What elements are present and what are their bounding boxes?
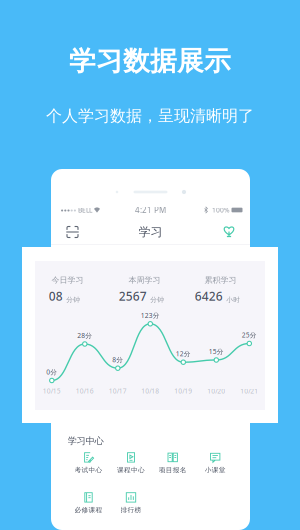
staticText: 2567	[119, 288, 147, 304]
staticText: BELL	[78, 206, 92, 214]
staticText: 分钟	[150, 296, 164, 304]
staticText: 小课堂	[205, 466, 226, 474]
staticText: 10/18	[141, 387, 159, 395]
staticText: 累积学习	[205, 275, 237, 285]
staticText: 10/19	[174, 387, 192, 395]
staticText: 28分	[77, 331, 92, 340]
button[interactable]: 课程中心	[111, 451, 151, 475]
staticText: 4:21 PM	[135, 205, 166, 215]
staticText: 课程中心	[117, 466, 145, 474]
staticText: 10/17	[109, 387, 127, 395]
staticText: 今日学习	[52, 275, 84, 285]
button[interactable]: Achievements	[219, 221, 238, 241]
staticText: 考试中心	[74, 466, 102, 474]
staticText: 8分	[112, 355, 123, 364]
staticText: 15分	[209, 347, 224, 356]
staticText: 10/20	[207, 387, 225, 395]
staticText: 本周学习	[128, 275, 160, 285]
button[interactable]: 排行榜	[111, 491, 151, 515]
staticText: 项目报名	[159, 466, 187, 474]
button[interactable]: 项目报名	[153, 451, 193, 475]
staticText: 10/15	[43, 387, 61, 395]
staticText: 10/21	[240, 387, 258, 395]
staticText: 08	[49, 288, 63, 304]
staticText: 学习	[138, 225, 162, 239]
staticText: 123分	[141, 311, 160, 320]
staticText: 12分	[176, 349, 191, 358]
staticText: 学习数据展示	[69, 45, 231, 77]
button[interactable]: 考试中心	[68, 451, 108, 475]
staticText: 6426	[195, 288, 223, 304]
staticText: 必修课程	[74, 506, 102, 514]
staticText: 100%	[212, 206, 230, 214]
staticText: 0分	[46, 368, 57, 376]
staticText: 个人学习数据，呈现清晰明了	[46, 106, 254, 126]
staticText: 10/16	[76, 387, 94, 395]
staticText: 学习中心	[67, 435, 103, 447]
button[interactable]: Scan	[63, 222, 82, 241]
staticText: 小时	[226, 296, 240, 304]
button[interactable]: 小课堂	[195, 451, 235, 475]
staticText: 分钟	[66, 296, 80, 304]
staticText: 排行榜	[120, 506, 141, 514]
staticText: 25分	[242, 331, 257, 339]
button[interactable]: 必修课程	[68, 491, 108, 515]
